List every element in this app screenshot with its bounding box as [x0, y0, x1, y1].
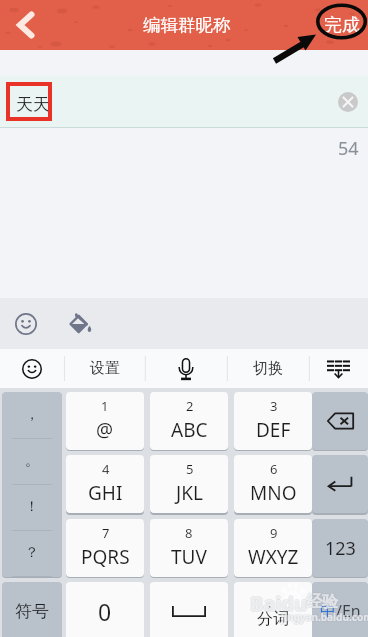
- staticText: 天天: [16, 94, 50, 115]
- staticText: 7: [102, 524, 110, 542]
- staticText: 经验: [307, 592, 339, 612]
- button[interactable]: 设置: [64, 349, 145, 388]
- button[interactable]: 符号: [2, 582, 62, 637]
- button[interactable]: 7: [66, 519, 144, 577]
- staticText: 经验: [306, 591, 338, 611]
- staticText: 经验: [305, 592, 337, 612]
- staticText: 分词: [257, 609, 289, 629]
- button[interactable]: 6: [234, 455, 312, 513]
- staticText: 1: [101, 397, 109, 415]
- staticText: 符号: [15, 601, 49, 622]
- staticText: TUV: [171, 544, 207, 570]
- button[interactable]: 完成: [310, 0, 368, 50]
- staticText: 中: [320, 601, 336, 621]
- button[interactable]: Punctuation: [2, 392, 62, 577]
- staticText: 54: [338, 136, 359, 161]
- button[interactable]: Emoji keyboard: [0, 349, 64, 388]
- staticText: Baidu: [251, 590, 308, 617]
- staticText: 4: [102, 460, 110, 478]
- button[interactable]: Theme: [64, 308, 96, 340]
- staticText: 0: [98, 596, 112, 627]
- button[interactable]: Back: [0, 0, 50, 50]
- staticText: ！: [25, 498, 39, 516]
- button[interactable]: Voice input: [145, 349, 227, 388]
- staticText: Baidu: [250, 589, 307, 616]
- button[interactable]: 123: [312, 519, 368, 577]
- staticText: JKL: [176, 480, 203, 506]
- button[interactable]: 4: [66, 455, 144, 513]
- staticText: ？: [25, 544, 39, 562]
- staticText: jingyan.baidu.com: [281, 610, 368, 624]
- staticText: /En: [336, 600, 361, 622]
- staticText: Baidu: [250, 590, 307, 617]
- staticText: GHI: [88, 480, 123, 506]
- staticText: jingyan.baidu.com: [281, 609, 368, 623]
- staticText: 6: [270, 460, 278, 478]
- staticText: 经验: [306, 593, 338, 613]
- staticText: Baidu: [250, 591, 307, 618]
- button[interactable]: Enter: [312, 455, 368, 513]
- staticText: 123: [325, 536, 356, 561]
- button[interactable]: Hide keyboard: [309, 349, 368, 388]
- staticText: ，: [25, 406, 39, 424]
- staticText: 经验: [306, 592, 338, 612]
- staticText: ABC: [171, 417, 208, 443]
- button[interactable]: Emoji: [10, 308, 42, 340]
- button[interactable]: 9: [234, 519, 312, 577]
- staticText: 编辑群昵称: [143, 14, 231, 36]
- button[interactable]: Clear text: [338, 92, 358, 112]
- staticText: 3: [270, 397, 278, 415]
- button[interactable]: 切换: [227, 349, 309, 388]
- button[interactable]: 5: [150, 455, 228, 513]
- button[interactable]: Backspace: [312, 392, 368, 450]
- button[interactable]: Switch language: [312, 582, 368, 637]
- staticText: DEF: [256, 417, 291, 443]
- staticText: MNO: [250, 480, 297, 506]
- staticText: Baidu: [249, 590, 306, 617]
- staticText: PQRS: [81, 544, 130, 570]
- staticText: 。: [25, 452, 39, 470]
- button[interactable]: 3: [234, 392, 312, 450]
- staticText: 5: [186, 460, 194, 478]
- button[interactable]: 、: [234, 582, 312, 637]
- staticText: 8: [185, 524, 193, 542]
- staticText: @: [96, 417, 114, 443]
- button[interactable]: 2: [150, 392, 228, 450]
- button[interactable]: 1: [66, 392, 144, 450]
- staticText: 2: [186, 397, 194, 415]
- staticText: jingyan.baidu.com: [281, 611, 368, 625]
- staticText: 切换: [253, 359, 283, 378]
- staticText: 9: [270, 524, 278, 542]
- staticText: WXYZ: [248, 544, 299, 570]
- staticText: jingyan.baidu.com: [282, 610, 368, 624]
- button[interactable]: Space: [150, 582, 228, 637]
- staticText: jingyan.baidu.com: [280, 610, 368, 624]
- staticText: 、: [267, 594, 279, 609]
- button[interactable]: 8: [150, 519, 228, 577]
- staticText: 完成: [324, 14, 360, 37]
- staticText: 设置: [90, 359, 120, 378]
- button[interactable]: 0: [66, 582, 144, 637]
